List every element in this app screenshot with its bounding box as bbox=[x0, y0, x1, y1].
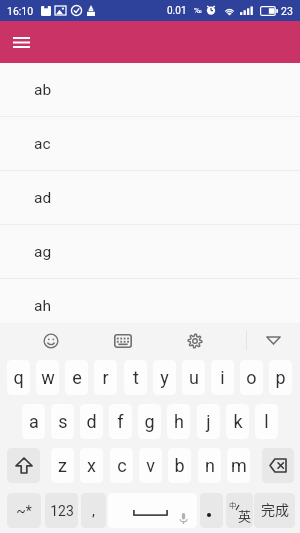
button[interactable]: Open navigation menu bbox=[5, 25, 38, 59]
button[interactable]: Shift bbox=[7, 448, 40, 483]
button[interactable]: w bbox=[36, 360, 59, 395]
staticText: , bbox=[92, 502, 95, 520]
staticText: h bbox=[174, 411, 184, 432]
staticText: z bbox=[58, 455, 67, 476]
button[interactable]: y bbox=[153, 360, 176, 395]
button[interactable]: t bbox=[124, 360, 147, 395]
staticText: g bbox=[144, 411, 155, 432]
button[interactable]: b bbox=[168, 448, 191, 483]
staticText: q bbox=[13, 367, 24, 388]
button[interactable]: ~* bbox=[7, 493, 41, 528]
button[interactable]: x bbox=[80, 448, 103, 483]
button[interactable]: c bbox=[110, 448, 133, 483]
button[interactable]: e bbox=[65, 360, 88, 395]
button[interactable]: Switch Chinese English bbox=[226, 493, 253, 528]
staticText: 23 bbox=[281, 5, 293, 17]
staticText: y bbox=[160, 367, 169, 388]
button[interactable]: j bbox=[197, 404, 220, 439]
staticText: 0.01 bbox=[167, 5, 187, 17]
button[interactable]: p bbox=[269, 360, 292, 395]
staticText: am bbox=[34, 459, 57, 477]
staticText: 123 bbox=[50, 503, 74, 519]
staticText: ab bbox=[34, 81, 52, 99]
button[interactable]: k bbox=[226, 404, 249, 439]
button[interactable]: d bbox=[80, 404, 103, 439]
staticText: 16:10 bbox=[7, 5, 34, 17]
staticText: 完成 bbox=[261, 499, 289, 519]
staticText: ac bbox=[34, 135, 51, 153]
button[interactable]: v bbox=[139, 448, 162, 483]
button[interactable]: ad bbox=[0, 171, 300, 225]
staticText: x bbox=[87, 455, 96, 476]
staticText: al bbox=[34, 405, 47, 423]
button[interactable]: ai bbox=[0, 333, 300, 387]
staticText: i bbox=[220, 367, 225, 388]
button[interactable]: 完成 bbox=[254, 493, 295, 528]
button[interactable]: Period bbox=[200, 493, 223, 528]
staticText: w bbox=[41, 367, 55, 388]
button[interactable]: ac bbox=[0, 117, 300, 171]
button[interactable]: Emoji bbox=[41, 323, 61, 360]
button[interactable]: 123 bbox=[45, 493, 78, 528]
staticText: l bbox=[264, 411, 269, 432]
staticText: ‰ bbox=[194, 6, 202, 15]
button[interactable]: f bbox=[109, 404, 132, 439]
staticText: 英 bbox=[238, 506, 252, 525]
staticText: ag bbox=[34, 243, 52, 261]
button[interactable]: Keyboard layout bbox=[112, 323, 134, 360]
staticText: b bbox=[174, 455, 185, 476]
staticText: u bbox=[189, 367, 199, 388]
button[interactable]: a bbox=[22, 404, 45, 439]
button[interactable]: m bbox=[227, 448, 250, 483]
button[interactable]: s bbox=[51, 404, 74, 439]
button[interactable]: o bbox=[240, 360, 263, 395]
button[interactable]: , bbox=[81, 493, 106, 528]
staticText: k bbox=[233, 411, 243, 432]
button[interactable]: u bbox=[182, 360, 205, 395]
staticText: ai bbox=[34, 351, 47, 369]
button[interactable]: am bbox=[0, 441, 300, 495]
staticText: f bbox=[117, 411, 124, 432]
button[interactable]: Hide keyboard bbox=[263, 323, 284, 360]
staticText: p bbox=[275, 367, 286, 388]
button[interactable]: n bbox=[198, 448, 221, 483]
button[interactable]: Space bbox=[108, 493, 197, 528]
staticText: c bbox=[117, 455, 127, 476]
staticText: s bbox=[58, 411, 68, 432]
staticText: o bbox=[246, 367, 257, 388]
staticText: v bbox=[146, 455, 155, 476]
button[interactable]: l bbox=[255, 404, 278, 439]
staticText: m bbox=[231, 455, 247, 476]
button[interactable]: Backspace bbox=[262, 448, 294, 483]
button[interactable]: r bbox=[94, 360, 117, 395]
button[interactable]: ah bbox=[0, 279, 300, 333]
button[interactable]: h bbox=[167, 404, 190, 439]
staticText: n bbox=[205, 455, 215, 476]
staticText: t bbox=[133, 367, 139, 388]
staticText: ad bbox=[34, 189, 52, 207]
staticText: ah bbox=[34, 297, 51, 315]
button[interactable]: ag bbox=[0, 225, 300, 279]
staticText: j bbox=[206, 411, 211, 432]
button[interactable]: al bbox=[0, 387, 300, 441]
staticText: 中 bbox=[229, 499, 237, 510]
button[interactable]: i bbox=[211, 360, 234, 395]
staticText: a bbox=[29, 411, 39, 432]
button[interactable]: q bbox=[7, 360, 30, 395]
button[interactable]: ab bbox=[0, 63, 300, 117]
button[interactable]: z bbox=[51, 448, 74, 483]
button[interactable]: g bbox=[138, 404, 161, 439]
button[interactable]: Settings bbox=[185, 323, 205, 360]
staticText: d bbox=[86, 411, 97, 432]
staticText: ~* bbox=[16, 503, 32, 519]
staticText: r bbox=[102, 367, 109, 388]
staticText: e bbox=[72, 367, 82, 388]
